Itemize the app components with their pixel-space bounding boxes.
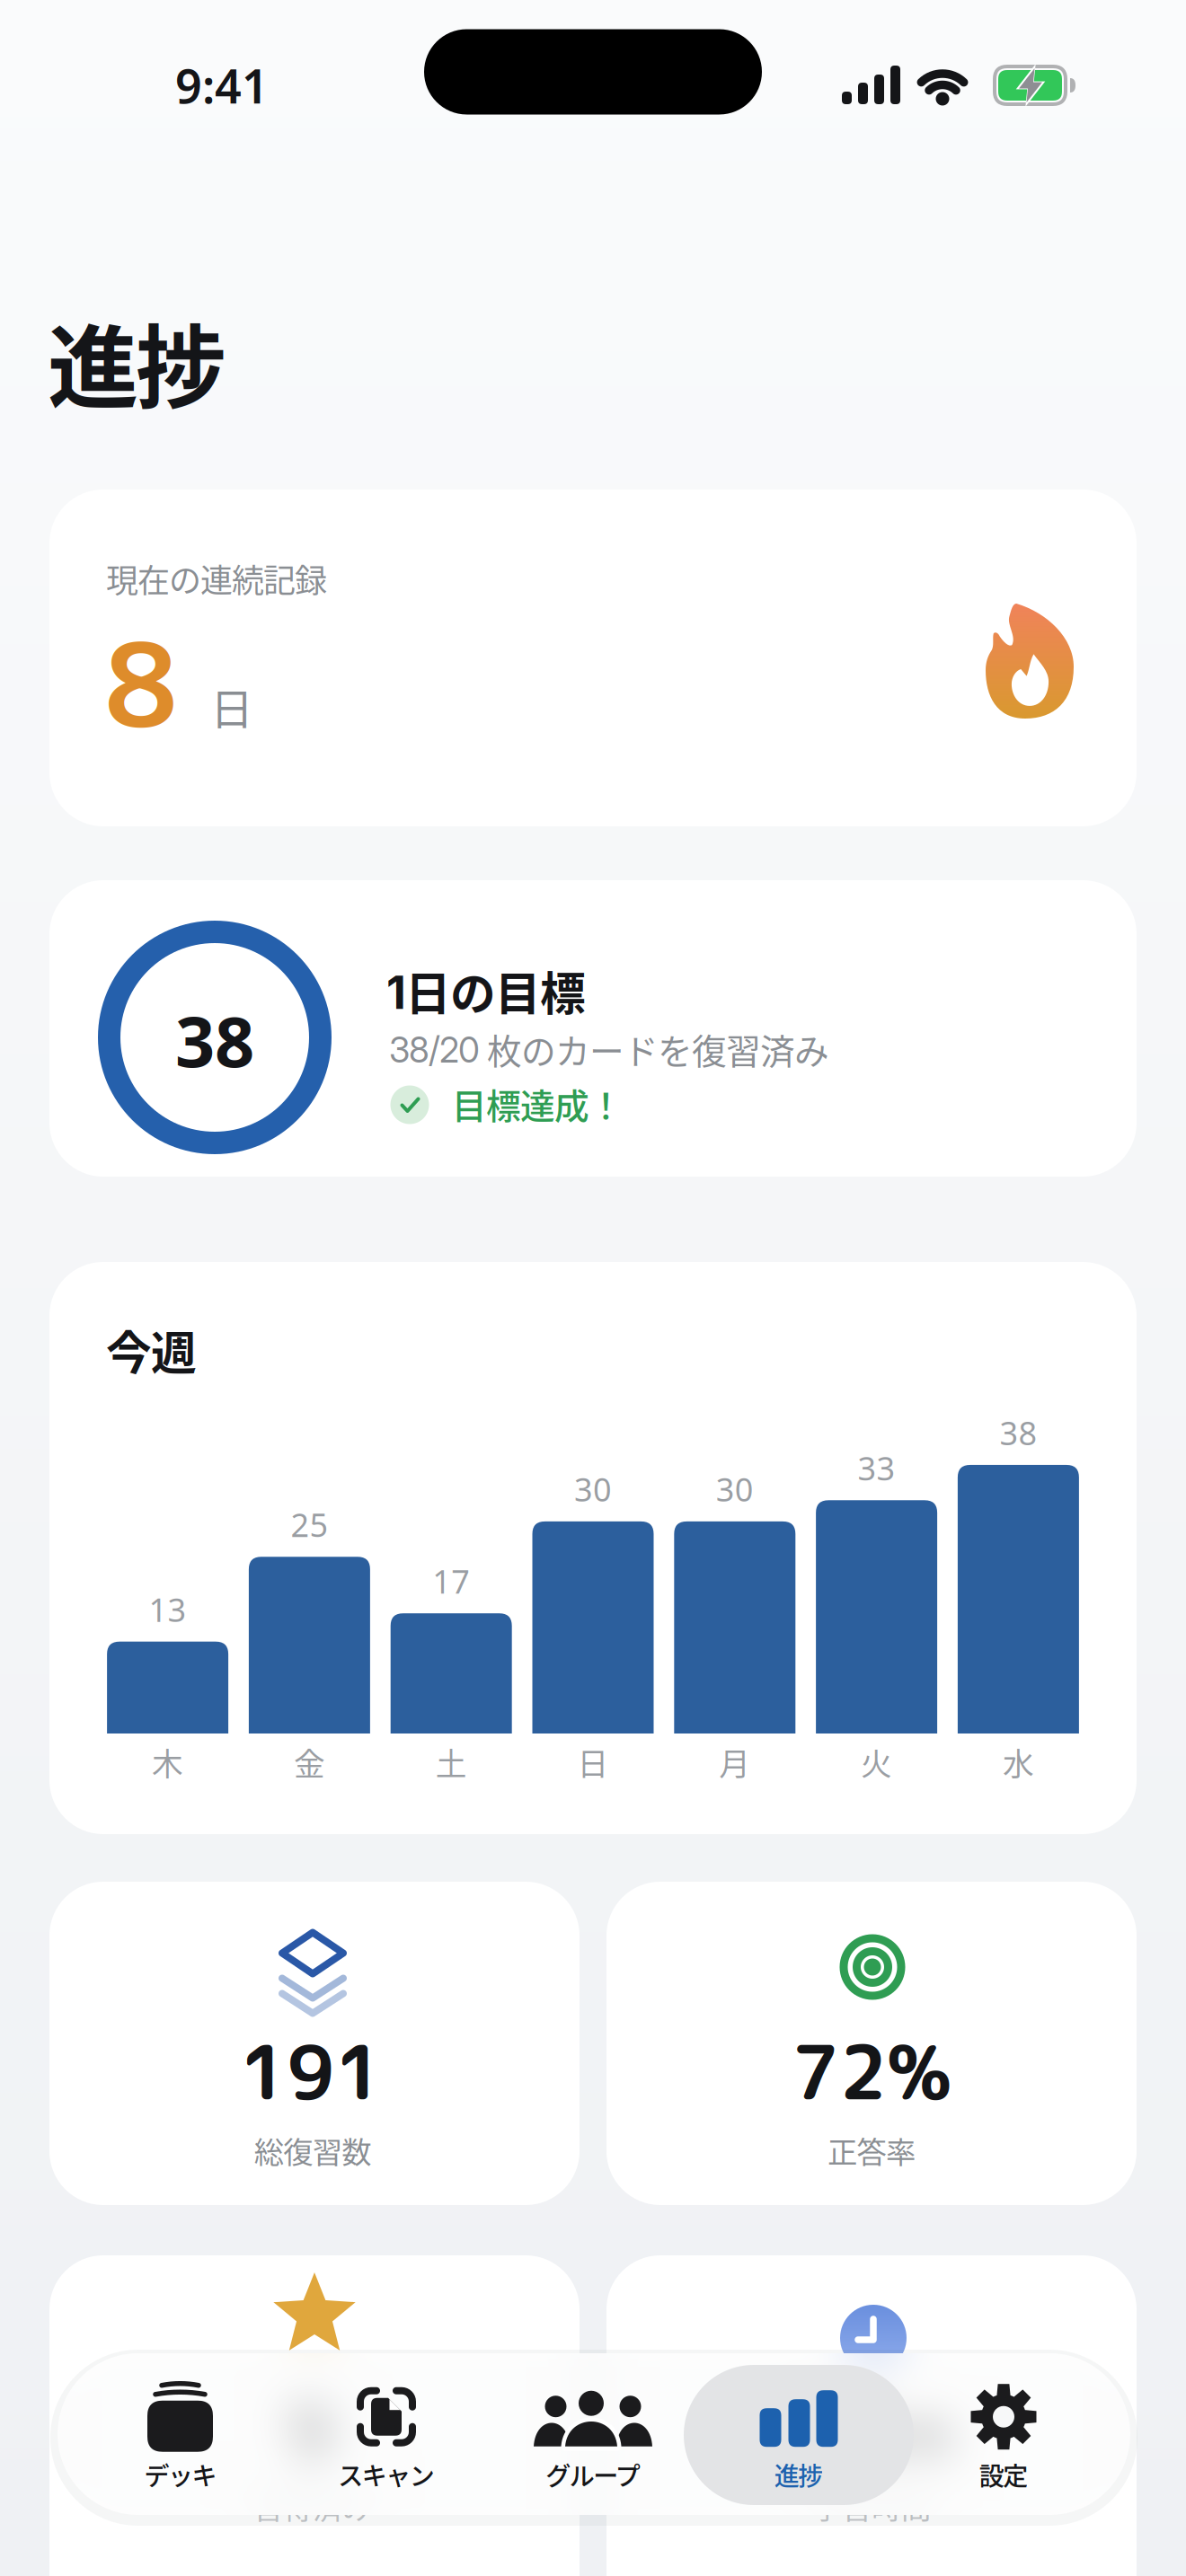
staticText: 目標達成！: [452, 1079, 624, 1129]
staticText: 進捗: [48, 295, 226, 427]
staticText: 38: [175, 994, 254, 1086]
staticText: 33: [858, 1446, 895, 1489]
staticText: 191: [239, 2019, 382, 2123]
staticText: 9:41: [175, 54, 269, 116]
staticText: 38/20 枚のカードを復習済み: [389, 1024, 829, 1074]
staticText: 72%: [792, 2019, 951, 2123]
staticText: 17: [432, 1560, 470, 1602]
staticText: グループ: [546, 2456, 640, 2493]
button[interactable]: 進捗: [698, 2369, 900, 2503]
staticText: 1日の目標: [386, 958, 586, 1024]
staticText: 正答率: [828, 2129, 916, 2172]
staticText: 習得済み: [253, 2484, 372, 2528]
staticText: 学習時間: [812, 2484, 931, 2528]
staticText: 現在の連続記録: [106, 555, 327, 602]
staticText: スキャン: [338, 2456, 435, 2493]
button[interactable]: グループ: [492, 2369, 694, 2503]
staticText: 8: [104, 603, 178, 764]
staticText: 火: [861, 1740, 892, 1785]
staticText: 総復習数: [254, 2129, 371, 2172]
staticText: 金: [294, 1740, 325, 1785]
staticText: デッキ: [144, 2456, 217, 2493]
staticText: 進捗: [774, 2456, 823, 2493]
staticText: 38m: [789, 2375, 954, 2486]
button[interactable]: スキャン: [285, 2369, 487, 2503]
button[interactable]: デッキ: [80, 2369, 282, 2503]
staticText: 設定: [979, 2456, 1028, 2493]
staticText: 30: [574, 1468, 612, 1511]
staticText: 30: [716, 1468, 754, 1511]
staticText: 今週: [106, 1317, 197, 1383]
staticText: 日: [577, 1740, 609, 1785]
staticText: 日: [210, 675, 253, 737]
staticText: 水: [1003, 1740, 1034, 1785]
staticText: 13: [149, 1588, 187, 1631]
staticText: 土: [435, 1740, 467, 1785]
button[interactable]: 設定: [903, 2369, 1105, 2503]
staticText: 38: [999, 1411, 1037, 1454]
staticText: 月: [719, 1740, 751, 1785]
staticText: 木: [152, 1740, 183, 1785]
staticText: 9: [285, 2375, 335, 2486]
staticText: 25: [291, 1503, 328, 1546]
